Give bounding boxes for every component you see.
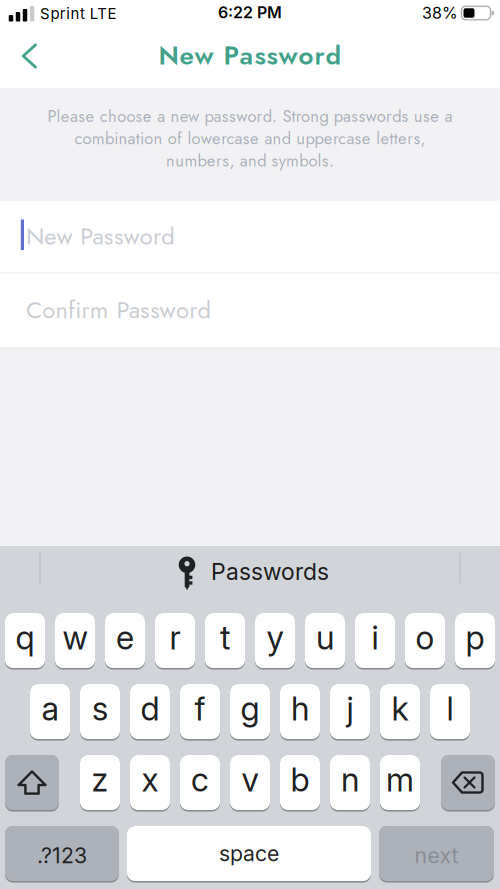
staticText: 6:22 PM [218,3,282,22]
button[interactable]: o [405,613,445,670]
staticText: o [415,618,434,657]
staticText: a [41,689,58,728]
staticText: h [291,689,309,728]
staticText: g [240,689,259,728]
staticText: x [141,760,158,799]
button[interactable]: Shift [5,755,59,812]
button[interactable]: z [80,755,120,812]
staticText: p [465,618,484,657]
staticText: d [140,689,159,728]
button[interactable]: Delete [441,755,495,812]
staticText: n [341,760,359,799]
staticText: e [116,618,134,657]
button[interactable]: c [180,755,220,812]
staticText: i [371,618,378,657]
staticText: next [414,843,458,868]
button[interactable]: x [130,755,170,812]
button[interactable]: New Password [0,201,500,272]
staticText: Sprint LTE [40,4,117,23]
staticText: Please choose a new password. Strong pas… [47,104,453,128]
staticText: l [446,689,453,728]
staticText: c [191,760,209,799]
button[interactable]: g [230,684,270,741]
staticText: z [91,760,108,799]
button[interactable]: n [330,755,370,812]
button[interactable]: p [455,613,495,670]
button[interactable]: s [80,684,120,741]
staticText: k [391,689,408,728]
staticText: combination of lowercase and uppercase l… [74,127,426,150]
button[interactable]: v [230,755,270,812]
staticText: Confirm Password [26,293,211,327]
staticText: b [290,760,309,799]
button[interactable]: Back [7,34,51,78]
button[interactable]: h [280,684,320,741]
button[interactable]: y [255,613,295,670]
staticText: s [92,689,108,728]
button[interactable]: a [30,684,70,741]
button[interactable]: q [5,613,45,670]
button[interactable]: f [180,684,220,741]
staticText: space [219,841,279,866]
button[interactable]: i [355,613,395,670]
button[interactable]: k [380,684,420,741]
button[interactable]: t [205,613,245,670]
staticText: u [316,618,334,657]
button[interactable]: r [155,613,195,670]
button[interactable]: Confirm Password [0,274,500,347]
staticText: 38% [422,3,458,23]
button[interactable]: b [280,755,320,812]
staticText: j [346,689,353,728]
staticText: y [266,618,283,657]
button[interactable]: .?123 [5,826,119,883]
button[interactable]: j [330,684,370,741]
staticText: New Password [26,219,175,253]
staticText: r [169,618,180,657]
button[interactable]: space [127,826,371,883]
staticText: w [62,618,87,657]
button[interactable]: m [380,755,420,812]
staticText: New Password [158,37,341,74]
staticText: .?123 [37,843,87,868]
button[interactable]: d [130,684,170,741]
button[interactable]: Passwords [113,546,393,596]
staticText: q [15,618,34,657]
button[interactable]: e [105,613,145,670]
staticText: m [386,760,414,799]
staticText: v [241,760,258,799]
button[interactable]: u [305,613,345,670]
button[interactable]: l [430,684,470,741]
button[interactable]: w [55,613,95,670]
staticText: f [194,689,205,728]
staticText: numbers, and symbols. [166,149,334,173]
button[interactable]: next [379,826,494,883]
staticText: Passwords [211,557,329,585]
staticText: t [220,618,230,657]
